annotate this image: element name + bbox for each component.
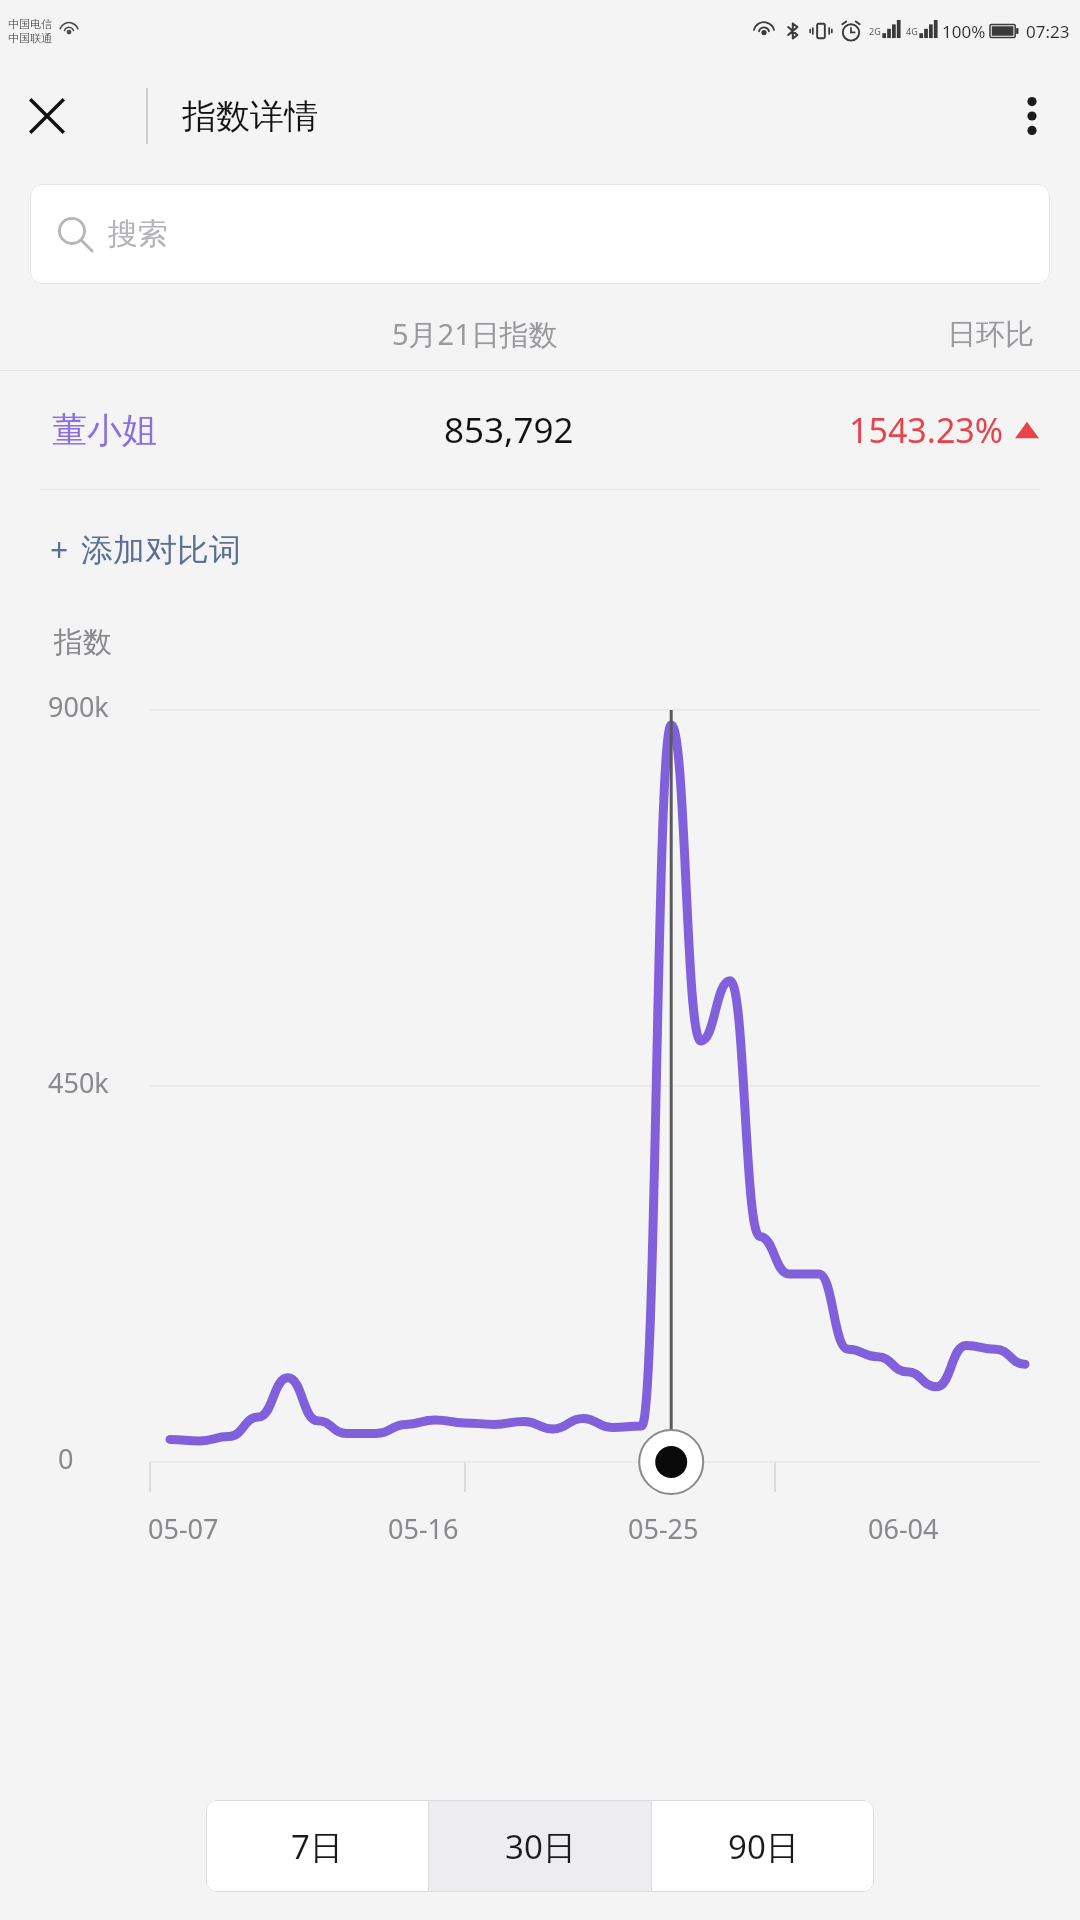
staticText: 07:23 (1026, 20, 1070, 43)
staticText: 指数详情 (182, 95, 318, 138)
staticText: 中国电信 (8, 17, 52, 31)
staticText: 1543.23% (849, 407, 1004, 453)
staticText: 日环比 (947, 316, 1034, 353)
staticText: 指数 (54, 624, 112, 661)
staticText: 2G (869, 25, 881, 37)
staticText: + (50, 528, 69, 572)
button[interactable]: Close (16, 85, 78, 147)
staticText: 添加对比词 (81, 530, 241, 570)
staticText: 05-25 (628, 1510, 699, 1547)
staticText: 450k (48, 1064, 109, 1101)
button[interactable]: + (40, 520, 251, 580)
button[interactable]: More options (1002, 86, 1062, 146)
button[interactable]: 搜索 (30, 184, 1050, 284)
button[interactable]: 30日 (429, 1800, 651, 1892)
staticText: 900k (48, 688, 109, 725)
staticText: 853,792 (444, 406, 574, 454)
button[interactable]: 董小姐 (0, 371, 1080, 489)
button[interactable]: 90日 (652, 1800, 874, 1892)
staticText: 5月21日指数 (392, 314, 558, 354)
staticText: 30日 (505, 1824, 576, 1869)
button[interactable]: 7日 (206, 1800, 428, 1892)
staticText: 搜索 (108, 215, 168, 253)
staticText: 05-07 (148, 1510, 219, 1547)
staticText: 0 (58, 1440, 74, 1477)
staticText: 7日 (291, 1824, 343, 1869)
staticText: 90日 (728, 1824, 799, 1869)
staticText: 06-04 (868, 1510, 939, 1547)
staticText: 05-16 (388, 1510, 459, 1547)
staticText: 中国联通 (8, 31, 52, 45)
staticText: 4G (906, 25, 918, 37)
staticText: 董小姐 (52, 408, 157, 452)
staticText: 100% (942, 20, 986, 43)
